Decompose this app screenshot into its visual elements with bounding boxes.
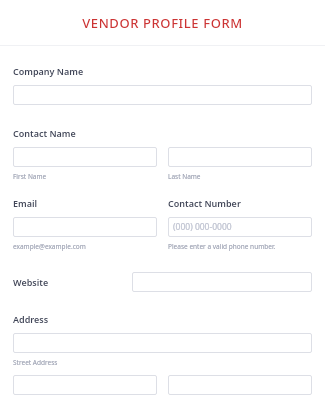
button[interactable] <box>13 333 312 353</box>
staticText: Contact Name <box>13 127 76 139</box>
staticText: VENDOR PROFILE FORM <box>82 14 243 32</box>
staticText: First Name <box>13 172 47 181</box>
staticText: Email <box>13 197 38 209</box>
staticText: Last Name <box>168 172 201 181</box>
button[interactable] <box>168 375 312 395</box>
staticText: Website <box>13 276 49 288</box>
staticText: example@example.com <box>13 242 86 251</box>
staticText: Please enter a valid phone number. <box>168 242 276 251</box>
button[interactable] <box>13 217 157 237</box>
button[interactable] <box>13 85 312 105</box>
button[interactable] <box>13 147 157 167</box>
staticText: Street Address <box>13 358 58 367</box>
button[interactable] <box>168 147 312 167</box>
button[interactable] <box>13 375 157 395</box>
staticText: Company Name <box>13 65 84 77</box>
button[interactable]: (000) 000-0000 <box>168 217 312 237</box>
staticText: Address <box>13 313 49 325</box>
button[interactable] <box>132 272 312 292</box>
staticText: Contact Number <box>168 197 241 209</box>
staticText: (000) 000-0000 <box>173 221 232 233</box>
